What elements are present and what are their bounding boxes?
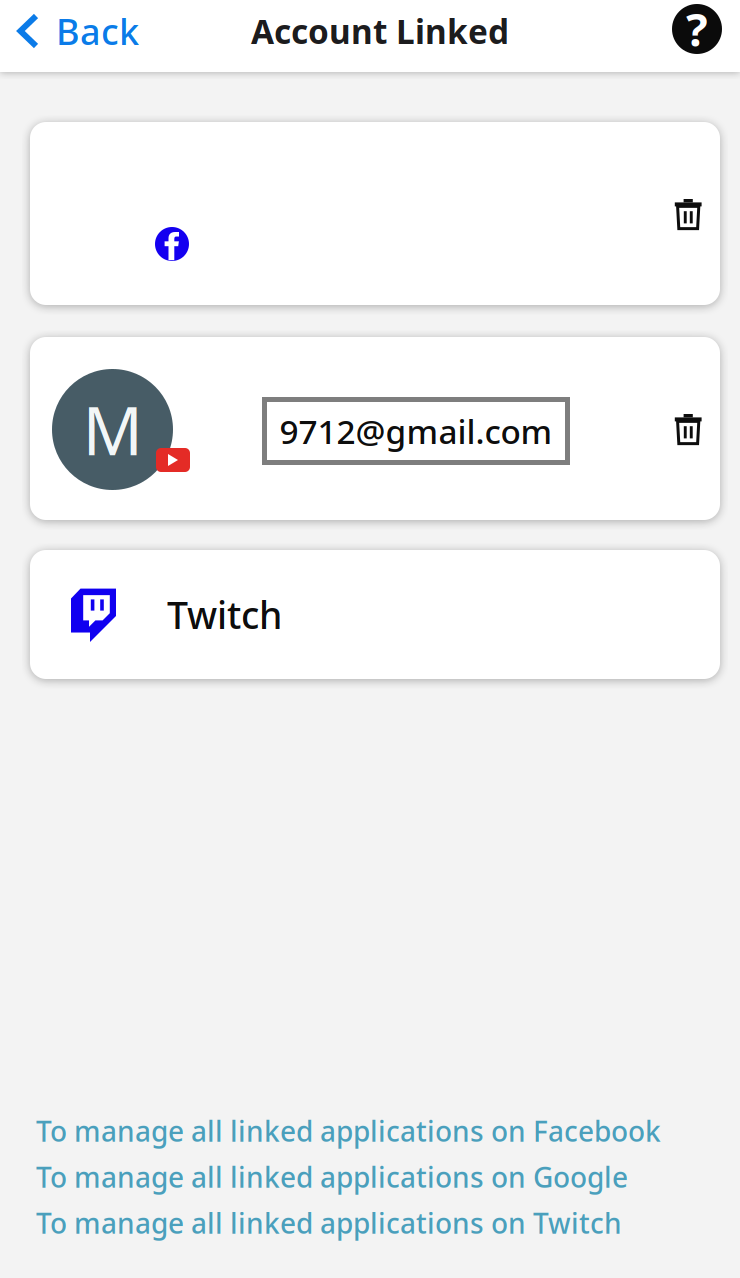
button[interactable]: Help bbox=[660, 1, 734, 57]
staticText: Twitch bbox=[167, 590, 282, 639]
button[interactable]: Twitch bbox=[30, 550, 720, 679]
button[interactable]: Remove linked Facebook account bbox=[662, 187, 714, 242]
button[interactable]: 9712@gmail.com bbox=[262, 397, 570, 465]
button[interactable]: To manage all linked applications on Twi… bbox=[36, 1200, 622, 1246]
button[interactable]: To manage all linked applications on Fac… bbox=[36, 1108, 661, 1154]
button[interactable]: Remove linked Google account bbox=[662, 402, 714, 457]
staticText: To manage all linked applications on Fac… bbox=[36, 1112, 661, 1150]
staticText: To manage all linked applications on Twi… bbox=[36, 1204, 622, 1242]
staticText: To manage all linked applications on Goo… bbox=[36, 1158, 628, 1196]
staticText: ? bbox=[686, 0, 708, 59]
button[interactable]: To manage all linked applications on Goo… bbox=[36, 1154, 628, 1200]
staticText: Back bbox=[56, 7, 139, 55]
staticText: 9712@gmail.com bbox=[279, 409, 552, 453]
button[interactable]: Back bbox=[0, 3, 153, 59]
staticText: Account Linked bbox=[251, 9, 509, 53]
staticText: M bbox=[82, 385, 142, 474]
